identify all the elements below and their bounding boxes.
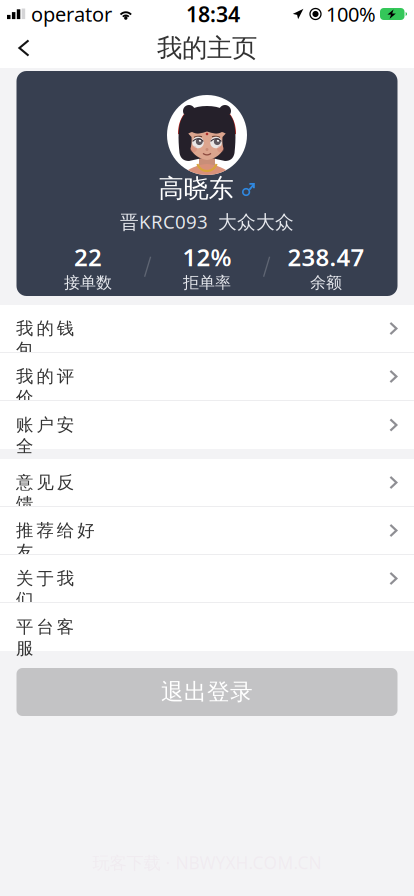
staticText: 余额 xyxy=(310,273,342,293)
button[interactable]: Back xyxy=(0,28,48,68)
button[interactable]: 关于我们 xyxy=(0,555,414,603)
staticText: 退出登录 xyxy=(161,678,253,706)
staticText: 我的主页 xyxy=(157,32,257,63)
staticText: 晋KRC093 大众大众 xyxy=(120,209,294,234)
button[interactable]: 账户安全 xyxy=(0,401,414,449)
staticText: 拒单率 xyxy=(183,273,231,293)
staticText: 100% xyxy=(326,1,376,27)
staticText: 接单数 xyxy=(64,273,112,293)
staticText: 平台客服 xyxy=(16,616,94,638)
staticText: 意见反馈 xyxy=(16,472,94,493)
button[interactable]: 我的钱包 xyxy=(0,305,414,353)
button[interactable]: 推荐给好友 xyxy=(0,507,414,555)
staticText: 18:34 xyxy=(186,0,240,28)
staticText: 账户安全 xyxy=(16,414,94,436)
button[interactable]: 我的评价 xyxy=(0,353,414,401)
staticText: 22 xyxy=(74,241,102,273)
staticText: 关于我们 xyxy=(16,568,94,589)
button[interactable]: 意见反馈 xyxy=(0,459,414,507)
staticText: operator xyxy=(31,1,112,27)
staticText: 推荐给好友 xyxy=(16,520,115,541)
staticText: 12% xyxy=(182,241,231,273)
staticText: 我的钱包 xyxy=(16,318,94,339)
staticText: 我的评价 xyxy=(16,366,94,387)
staticText: 高晓东 xyxy=(158,173,233,204)
staticText: 238.47 xyxy=(287,241,364,273)
button[interactable]: 平台客服 xyxy=(0,603,414,651)
button[interactable]: 退出登录 xyxy=(16,668,397,716)
